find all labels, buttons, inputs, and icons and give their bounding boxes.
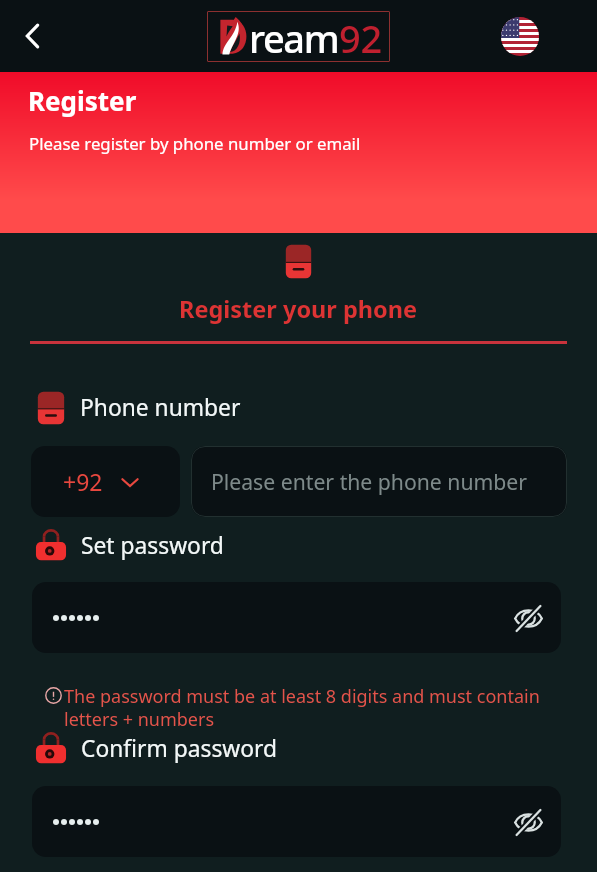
button[interactable]: Select language [501,17,539,56]
staticText: 92 [339,12,383,63]
button[interactable]: Set password [35,528,224,563]
button[interactable]: Confirm password [35,731,278,766]
button[interactable]: Phone number [37,391,241,425]
button[interactable]: Show password [510,804,546,840]
staticText: +92 [63,466,103,497]
button[interactable]: Please enter the phone number [191,446,567,517]
button[interactable]: Show password [510,600,546,636]
staticText: Please register by phone number or email [29,132,361,155]
staticText: Phone number [80,392,241,423]
button[interactable]: +92 [31,446,180,517]
staticText: Set password [81,530,224,561]
staticText: Confirm password [81,733,278,764]
staticText: ream [249,12,339,63]
staticText: Please enter the phone number [211,467,528,496]
button[interactable]: ream [207,11,390,62]
staticText: The password must be at least 8 digits a… [64,684,565,731]
button[interactable]: Show password [32,582,561,653]
staticText: Register [28,83,137,118]
staticText: Register your phone [179,293,418,325]
button[interactable]: Show password [32,786,561,857]
button[interactable]: Back [10,13,56,59]
